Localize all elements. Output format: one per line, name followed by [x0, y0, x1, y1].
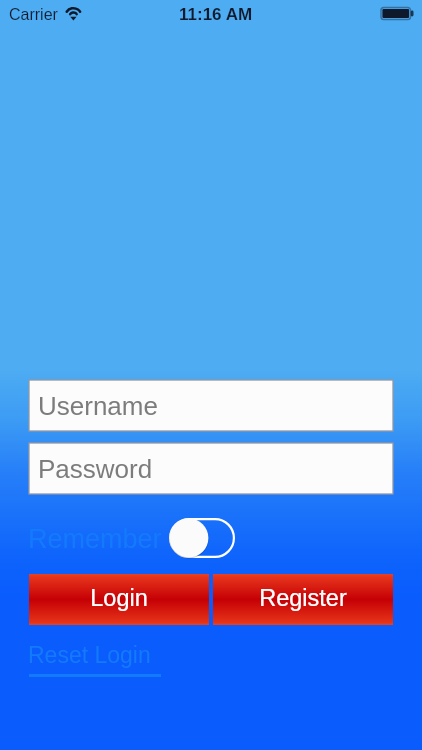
other: Battery full	[379, 5, 417, 21]
button[interactable]: Reset Login	[29, 639, 161, 679]
staticText: Password	[38, 454, 153, 483]
staticText: Username	[38, 391, 158, 420]
button[interactable]: Login	[29, 574, 209, 625]
button[interactable]: Remember	[28, 524, 162, 554]
other: Wi-Fi	[64, 4, 83, 22]
staticText: Reset Login	[28, 642, 151, 668]
button[interactable]: Password	[29, 443, 393, 494]
staticText: Carrier	[9, 6, 58, 24]
button[interactable]: Username	[29, 380, 393, 431]
staticText: 11:16 AM	[179, 5, 253, 24]
button[interactable]: Remember me	[169, 518, 235, 558]
staticText: Register	[259, 585, 347, 611]
button[interactable]: Register	[213, 574, 393, 625]
staticText: Login	[90, 585, 148, 611]
